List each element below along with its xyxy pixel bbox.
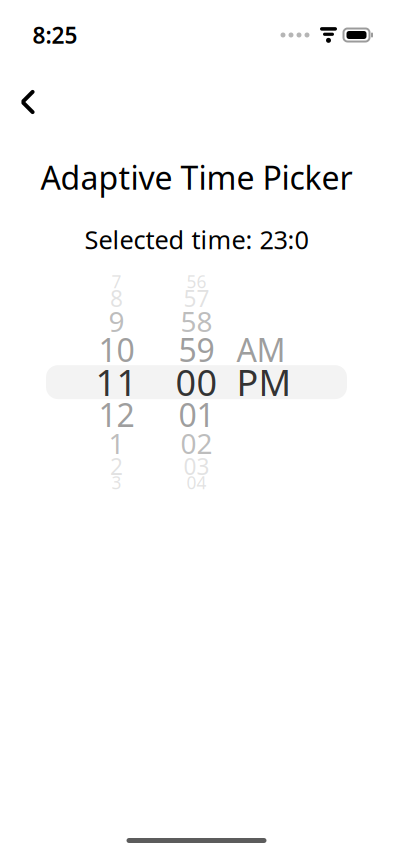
staticText: PM <box>236 358 291 406</box>
staticText: 10 <box>98 328 134 371</box>
staticText: 04 <box>186 471 206 494</box>
staticText: 03 <box>183 451 209 481</box>
staticText: 57 <box>183 283 209 313</box>
staticText: 9 <box>108 302 124 340</box>
staticText: 12 <box>98 393 134 436</box>
staticText: 01 <box>178 393 214 436</box>
staticText: 3 <box>111 471 121 494</box>
staticText: Adaptive Time Picker <box>40 156 352 198</box>
staticText: 2 <box>110 451 123 481</box>
staticText: 11 <box>95 358 137 406</box>
staticText: 02 <box>180 424 212 462</box>
staticText: 1 <box>108 424 124 462</box>
button[interactable]: Back <box>0 80 62 124</box>
staticText <box>273 302 280 340</box>
staticText: 56 <box>186 270 206 293</box>
staticText: 8:25 <box>32 20 77 50</box>
staticText: AM <box>236 328 285 371</box>
staticText: 58 <box>180 302 212 340</box>
staticText <box>272 393 280 436</box>
staticText: Selected time: 23:0 <box>84 222 308 256</box>
staticText: 00 <box>175 358 217 406</box>
staticText: 8 <box>110 283 123 313</box>
staticText: 59 <box>178 328 214 371</box>
staticText: 7 <box>111 270 121 293</box>
